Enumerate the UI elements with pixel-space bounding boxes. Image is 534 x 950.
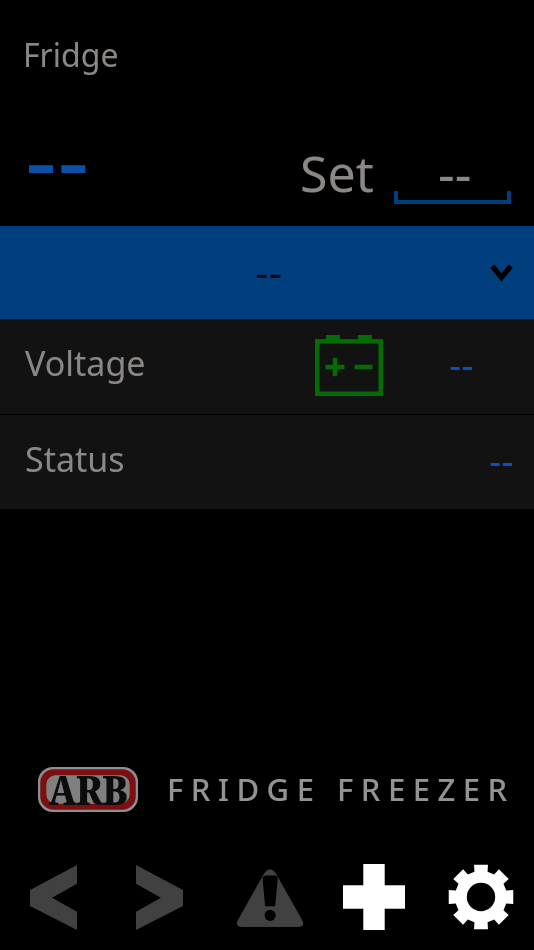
- staticText: Voltage: [25, 340, 146, 386]
- staticText: --: [489, 434, 514, 486]
- button[interactable]: --: [0, 226, 534, 319]
- staticText: --: [449, 338, 474, 390]
- button[interactable]: Status: [0, 415, 534, 509]
- staticText: Set: [300, 139, 374, 207]
- staticText: Status: [25, 436, 125, 482]
- button[interactable]: Next: [106, 844, 213, 950]
- button[interactable]: Previous: [0, 844, 106, 950]
- staticText: FRIDGE FREEZER: [167, 768, 515, 810]
- staticText: --: [255, 243, 283, 300]
- staticText: --: [25, 89, 90, 225]
- staticText: Fridge: [23, 33, 119, 77]
- button[interactable]: --: [394, 150, 511, 204]
- staticText: --: [438, 137, 472, 191]
- button[interactable]: Alarms: [213, 844, 320, 950]
- button[interactable]: Add fridge: [320, 844, 427, 950]
- button[interactable]: Voltage: [0, 319, 534, 414]
- button[interactable]: Settings: [427, 844, 534, 950]
- staticText: ARB: [48, 764, 128, 813]
